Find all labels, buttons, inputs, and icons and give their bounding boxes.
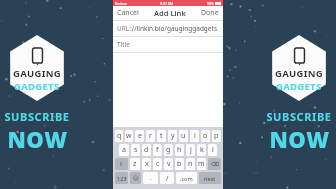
staticText: y — [171, 131, 175, 141]
staticText: q — [117, 131, 122, 141]
staticText: GAUGING — [275, 67, 323, 80]
button[interactable]: next — [199, 172, 221, 184]
button[interactable]: a — [119, 144, 129, 156]
staticText: Verizon — [115, 1, 128, 6]
button[interactable]: .com — [176, 172, 197, 184]
button[interactable]: d — [142, 144, 151, 156]
button[interactable]: n — [186, 158, 195, 170]
button[interactable]: g — [164, 144, 173, 156]
staticText: SUBSCRIBE — [4, 109, 70, 124]
button[interactable]: m — [197, 158, 206, 170]
button[interactable]: i — [190, 130, 199, 142]
button[interactable]: . — [143, 172, 158, 184]
staticText: Cancel — [117, 8, 139, 18]
staticText: f — [156, 145, 159, 155]
staticText: NOW — [269, 124, 330, 154]
button[interactable]: b — [175, 158, 184, 170]
staticText: d — [144, 145, 149, 155]
staticText: k — [200, 145, 204, 155]
staticText: ⇧ — [119, 161, 124, 167]
staticText: c — [156, 159, 160, 169]
button[interactable]: y — [168, 130, 177, 142]
button[interactable]: / — [160, 172, 174, 184]
staticText: next — [204, 175, 216, 182]
button[interactable]: l — [208, 144, 217, 156]
staticText: t — [160, 131, 163, 141]
button[interactable]: p — [212, 130, 221, 142]
button[interactable]: Numbers — [115, 172, 128, 184]
staticText: e — [138, 131, 142, 141]
staticText: Title — [117, 40, 130, 49]
staticText: 123 — [117, 175, 127, 182]
button[interactable]: Title — [113, 37, 223, 52]
staticText: i — [194, 131, 196, 141]
staticText: a — [122, 145, 126, 155]
button[interactable]: v — [164, 158, 173, 170]
button[interactable]: w — [125, 130, 133, 142]
staticText: n — [188, 159, 193, 169]
staticText: NOW — [7, 124, 68, 154]
staticText: s — [134, 145, 138, 155]
button[interactable]: Shift — [115, 158, 128, 170]
staticText: . — [150, 174, 152, 182]
staticText: r — [149, 131, 152, 141]
button[interactable]: h — [175, 144, 184, 156]
staticText: GADGETS — [14, 80, 60, 93]
button[interactable]: k — [197, 144, 206, 156]
button[interactable]: e — [135, 130, 144, 142]
button[interactable]: j — [186, 144, 195, 156]
button[interactable]: c — [153, 158, 162, 170]
staticText: GADGETS — [276, 80, 322, 93]
staticText: v — [167, 159, 171, 169]
button[interactable]: x — [142, 158, 151, 170]
staticText: x — [145, 159, 149, 169]
button[interactable]: t — [157, 130, 166, 142]
button[interactable]: z — [130, 158, 140, 170]
button[interactable]: q — [115, 130, 123, 142]
staticText: b — [177, 159, 182, 169]
staticText: w — [126, 131, 132, 141]
staticText: h — [177, 145, 182, 155]
staticText: 98% — [207, 1, 214, 6]
staticText: GAUGING — [13, 67, 61, 80]
staticText: / — [166, 174, 169, 183]
button[interactable]: URL — [113, 21, 223, 36]
staticText: z — [133, 159, 137, 169]
button[interactable]: Emoji — [130, 172, 141, 184]
staticText: ⌫ — [211, 161, 219, 167]
staticText: g — [166, 145, 171, 155]
staticText: ☺ — [133, 175, 139, 181]
button[interactable]: Backspace — [208, 158, 221, 170]
button[interactable]: r — [146, 130, 155, 142]
button[interactable]: u — [179, 130, 188, 142]
button[interactable]: Done — [197, 8, 223, 18]
staticText: .com — [180, 175, 193, 182]
staticText: Done — [201, 8, 219, 18]
staticText: URL — [117, 24, 130, 33]
staticText: Add Link — [154, 8, 186, 18]
staticText: j — [190, 145, 192, 155]
button[interactable]: o — [201, 130, 210, 142]
staticText: m — [198, 159, 205, 169]
staticText: SUBSCRIBE — [266, 109, 332, 124]
staticText: ://linkin.bio/gauginggadgets — [130, 24, 217, 33]
staticText: u — [181, 131, 186, 141]
button[interactable]: s — [131, 144, 140, 156]
staticText: 9:37 AM — [160, 1, 174, 6]
button[interactable]: Cancel — [113, 8, 143, 18]
button[interactable]: f — [153, 144, 162, 156]
staticText: p — [214, 131, 219, 141]
staticText: l — [212, 145, 214, 155]
staticText: o — [203, 131, 208, 141]
